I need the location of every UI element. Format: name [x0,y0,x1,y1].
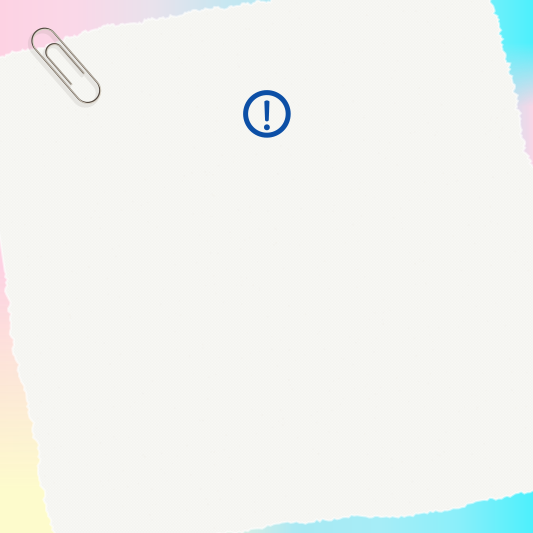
button[interactable]: Alert [239,86,295,142]
